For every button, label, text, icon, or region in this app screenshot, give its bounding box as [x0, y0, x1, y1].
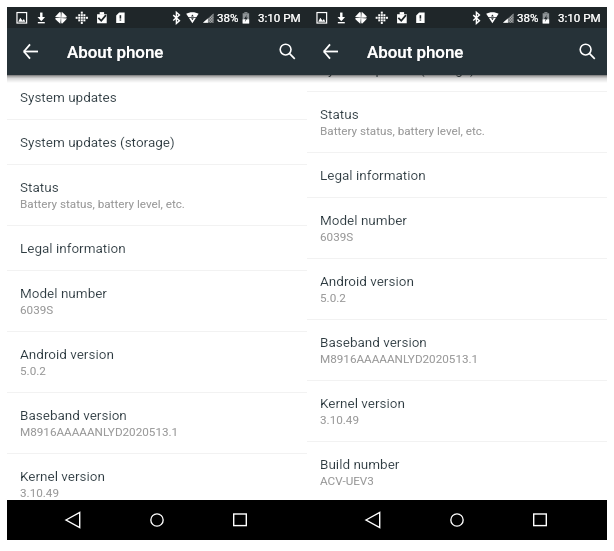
button[interactable]: Legal information	[7, 226, 307, 271]
staticText: 5.0.2	[20, 364, 46, 378]
staticText: Model number	[20, 285, 107, 301]
button[interactable]: Kernel version	[7, 454, 307, 500]
staticText: 3:10 PM	[558, 11, 601, 25]
button[interactable]: Navigate up	[307, 28, 353, 74]
staticText: System updates (storage)	[320, 75, 475, 77]
staticText: 38%	[517, 11, 539, 25]
staticText: Model number	[320, 212, 407, 228]
button[interactable]: Back	[353, 500, 393, 540]
button[interactable]: Legal information	[307, 153, 607, 198]
button[interactable]: Model number	[7, 271, 307, 332]
button[interactable]: System updates (storage)	[7, 120, 307, 165]
button[interactable]: Build number	[307, 442, 607, 500]
staticText: ACV-UEV3	[320, 474, 374, 488]
staticText: Kernel version	[320, 395, 405, 411]
staticText: 3.10.49	[320, 413, 360, 427]
button[interactable]: System updates	[7, 75, 307, 120]
staticText: Status	[320, 106, 359, 122]
button[interactable]: Search	[265, 29, 311, 75]
button[interactable]: Android version	[7, 332, 307, 393]
staticText: Baseband version	[20, 407, 127, 423]
staticText: 3:10 PM	[258, 11, 301, 25]
staticText: M8916AAAAANLYD2020513.1	[20, 425, 179, 439]
button[interactable]: Recent apps	[520, 500, 560, 540]
staticText: About phone	[67, 42, 164, 62]
button[interactable]: Kernel version	[307, 381, 607, 442]
button[interactable]: Model number	[307, 198, 607, 259]
staticText: Baseband version	[320, 334, 427, 350]
staticText: Battery status, battery level, etc.	[20, 197, 185, 211]
staticText: System updates	[20, 89, 117, 105]
staticText: 5.0.2	[320, 291, 346, 305]
button[interactable]: Baseband version	[7, 393, 307, 454]
staticText: 3.10.49	[20, 486, 60, 500]
button[interactable]: Android version	[307, 259, 607, 320]
button[interactable]: Back	[53, 500, 93, 540]
staticText: About phone	[367, 42, 464, 62]
button[interactable]: Search	[565, 29, 611, 75]
button[interactable]: System updates (storage)	[307, 75, 607, 92]
staticText: System updates (storage)	[20, 134, 175, 150]
button[interactable]: Status	[307, 92, 607, 153]
button[interactable]: Home	[437, 500, 477, 540]
staticText: Battery status, battery level, etc.	[320, 124, 485, 138]
button[interactable]: Navigate up	[7, 28, 53, 74]
staticText: Kernel version	[20, 468, 105, 484]
staticText: Android version	[320, 273, 414, 289]
button[interactable]: Baseband version	[307, 320, 607, 381]
staticText: 6039S	[20, 303, 54, 317]
staticText: Legal information	[20, 240, 126, 256]
staticText: 38%	[217, 11, 239, 25]
button[interactable]: Status	[7, 165, 307, 226]
staticText: Android version	[20, 346, 114, 362]
staticText: Legal information	[320, 167, 426, 183]
button[interactable]: Recent apps	[220, 500, 260, 540]
staticText: Build number	[320, 456, 400, 472]
staticText: M8916AAAAANLYD2020513.1	[320, 352, 479, 366]
staticText: 6039S	[320, 230, 354, 244]
button[interactable]: Home	[137, 500, 177, 540]
staticText: Status	[20, 179, 59, 195]
